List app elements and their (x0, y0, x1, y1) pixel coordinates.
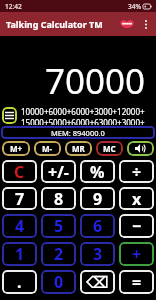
staticText: 12:42 (5, 2, 22, 11)
staticText: 5 (54, 215, 64, 237)
staticText: 1 (15, 243, 25, 265)
button[interactable]: Speak (119, 16, 135, 32)
button[interactable]: = (119, 270, 154, 294)
staticText: 0 (54, 271, 64, 293)
staticText: 9 (93, 188, 103, 210)
button[interactable]: 4 (2, 214, 37, 238)
button[interactable]: M- (34, 141, 61, 156)
staticText: 6 (93, 215, 103, 237)
staticText: Talking Calculator TM (6, 18, 103, 30)
button[interactable]: x (119, 187, 154, 210)
staticText: + (132, 243, 142, 265)
button[interactable] (127, 141, 154, 156)
button[interactable]: MC (96, 141, 123, 156)
staticText: ÷ (132, 161, 142, 183)
button[interactable]: − (119, 214, 154, 238)
button[interactable]: 0 (41, 270, 76, 294)
staticText: − (132, 215, 142, 237)
staticText: M- (42, 143, 53, 154)
staticText: 4 (15, 215, 25, 237)
staticText: 3 (93, 243, 103, 265)
button[interactable]: 7 (2, 187, 37, 210)
button[interactable]: . (2, 270, 37, 294)
staticText: 15000+5000+6000+63000+3000+ (21, 117, 145, 125)
staticText: 7 (15, 188, 25, 210)
button[interactable]: M+ (2, 141, 30, 156)
staticText: ⌫ (86, 273, 109, 292)
staticText: M+ (10, 143, 23, 154)
staticText: MC (103, 143, 116, 154)
staticText: 8 (54, 188, 64, 210)
staticText: = (132, 271, 142, 293)
staticText: x (132, 188, 142, 210)
button[interactable]: ⌫ (80, 270, 115, 294)
staticText: 70000 (45, 57, 146, 105)
button[interactable]: + (119, 242, 154, 266)
button[interactable]: 8 (41, 187, 76, 210)
button[interactable]: 5 (41, 214, 76, 238)
button[interactable]: More options (139, 17, 153, 31)
button[interactable]: 2 (41, 242, 76, 266)
button[interactable]: MR (65, 141, 92, 156)
staticText: . (17, 271, 22, 293)
staticText: 10000+6000+6000+3000+12000+ (21, 106, 145, 117)
button[interactable]: 9 (80, 187, 115, 210)
staticText: C (14, 161, 25, 183)
button[interactable]: 1 (2, 242, 37, 266)
button[interactable]: ÷ (119, 160, 154, 183)
staticText: 2 (54, 243, 64, 265)
staticText: 34% (128, 2, 141, 11)
button[interactable]: 6 (80, 214, 115, 238)
button[interactable]: C (2, 160, 37, 183)
button[interactable]: +/- (41, 160, 76, 183)
staticText: MR (72, 143, 85, 154)
staticText: MEM: 894000.0 (51, 128, 105, 138)
staticText: +/- (48, 161, 69, 183)
staticText: % (90, 161, 105, 183)
button[interactable]: 3 (80, 242, 115, 266)
button[interactable]: History (2, 107, 17, 124)
button[interactable]: % (80, 160, 115, 183)
